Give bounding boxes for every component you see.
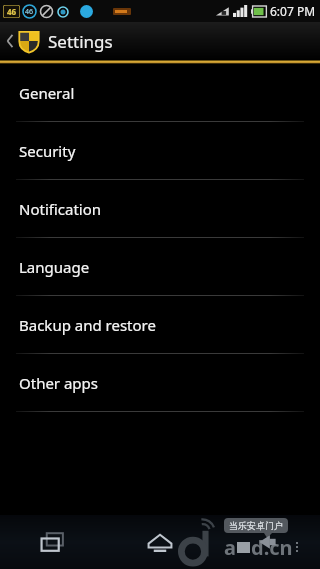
button[interactable]: Other apps <box>0 354 320 412</box>
staticText: Security <box>19 141 76 161</box>
staticText: 46 <box>25 7 34 17</box>
button[interactable]: Back <box>213 515 320 569</box>
button[interactable]: General <box>0 64 320 122</box>
staticText: Other apps <box>19 373 99 393</box>
button[interactable]: Home <box>106 515 213 569</box>
button[interactable]: Back to previous screen <box>0 22 320 60</box>
staticText: Language <box>19 257 90 277</box>
staticText: 46 <box>7 6 17 17</box>
button[interactable]: Recent apps <box>0 515 106 569</box>
staticText: Backup and restore <box>19 315 156 335</box>
staticText: 6:07 PM <box>270 3 316 19</box>
button[interactable]: Language <box>0 238 320 296</box>
button[interactable]: Security <box>0 122 320 180</box>
staticText: d.cn <box>251 534 293 561</box>
staticText: Settings <box>48 30 113 53</box>
staticText: Notification <box>19 199 102 219</box>
button[interactable]: Notification <box>0 180 320 238</box>
button[interactable]: Backup and restore <box>0 296 320 354</box>
staticText: 当乐安卓门户 <box>229 520 283 531</box>
staticText: a <box>224 534 236 561</box>
staticText: General <box>19 83 75 103</box>
